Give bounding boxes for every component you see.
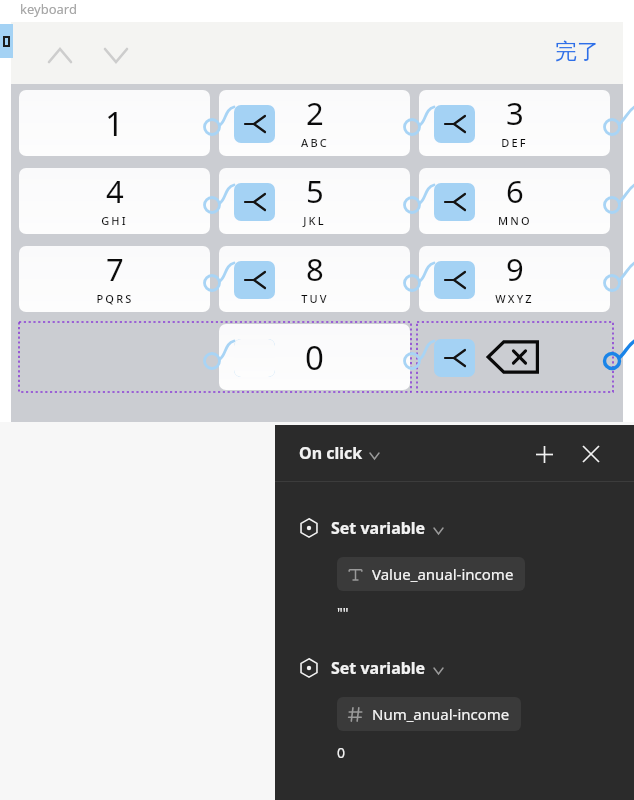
- button[interactable]: Set variable: [299, 517, 443, 539]
- button[interactable]: Interaction: [434, 339, 475, 377]
- button[interactable]: Interaction: [234, 105, 275, 143]
- staticText: Num_anual-income: [372, 704, 510, 724]
- button[interactable]: Close: [574, 437, 608, 471]
- staticText: 8: [306, 248, 324, 290]
- staticText: 4: [106, 170, 124, 212]
- staticText: JKL: [303, 213, 326, 228]
- button[interactable]: Interaction: [434, 261, 475, 299]
- staticText: TUV: [301, 291, 329, 306]
- button[interactable]: 3: [419, 90, 610, 156]
- staticText: DEF: [501, 135, 528, 150]
- button[interactable]: 1: [19, 90, 210, 156]
- button[interactable]: 4: [19, 168, 210, 234]
- staticText: MNO: [498, 213, 532, 228]
- staticText: 0: [337, 743, 346, 762]
- staticText: WXYZ: [495, 291, 534, 306]
- button[interactable]: 6: [419, 168, 610, 234]
- button[interactable]: Value_anual-income: [337, 557, 525, 591]
- button[interactable]: Delete: [419, 324, 610, 390]
- button[interactable]: Interaction: [234, 183, 275, 221]
- button[interactable]: Interaction: [234, 339, 275, 377]
- button[interactable]: 5: [219, 168, 410, 234]
- button[interactable]: Interaction: [434, 105, 475, 143]
- button[interactable]: 0: [219, 324, 410, 390]
- staticText: 2: [306, 92, 324, 134]
- staticText: 9: [506, 248, 524, 290]
- staticText: 6: [506, 170, 524, 212]
- button[interactable]: Interaction: [434, 183, 475, 221]
- button[interactable]: Interaction: [234, 261, 275, 299]
- staticText: 1: [105, 101, 124, 146]
- button[interactable]: Next field: [99, 38, 133, 72]
- staticText: Value_anual-income: [372, 564, 514, 584]
- staticText: 3: [506, 92, 524, 134]
- button[interactable]: 9: [419, 246, 610, 312]
- staticText: keyboard: [20, 0, 77, 18]
- button[interactable]: Num_anual-income: [337, 697, 521, 731]
- button[interactable]: Previous field: [43, 38, 77, 72]
- staticText: 5: [306, 170, 324, 212]
- staticText: GHI: [101, 213, 128, 228]
- staticText: Set variable: [331, 517, 426, 539]
- staticText: PQRS: [96, 291, 134, 306]
- staticText: "": [337, 603, 349, 622]
- button[interactable]: 8: [219, 246, 410, 312]
- button[interactable]: 7: [19, 246, 210, 312]
- staticText: ABC: [301, 135, 329, 150]
- staticText: 7: [106, 248, 124, 290]
- button[interactable]: On click: [299, 442, 379, 464]
- staticText: On click: [299, 442, 363, 464]
- button[interactable]: Add action: [527, 437, 561, 471]
- button[interactable]: 完了: [551, 34, 603, 70]
- button[interactable]: Set variable: [299, 657, 443, 679]
- staticText: Set variable: [331, 657, 426, 679]
- staticText: 完了: [555, 38, 599, 66]
- staticText: 0: [305, 335, 324, 380]
- button[interactable]: 2: [219, 90, 410, 156]
